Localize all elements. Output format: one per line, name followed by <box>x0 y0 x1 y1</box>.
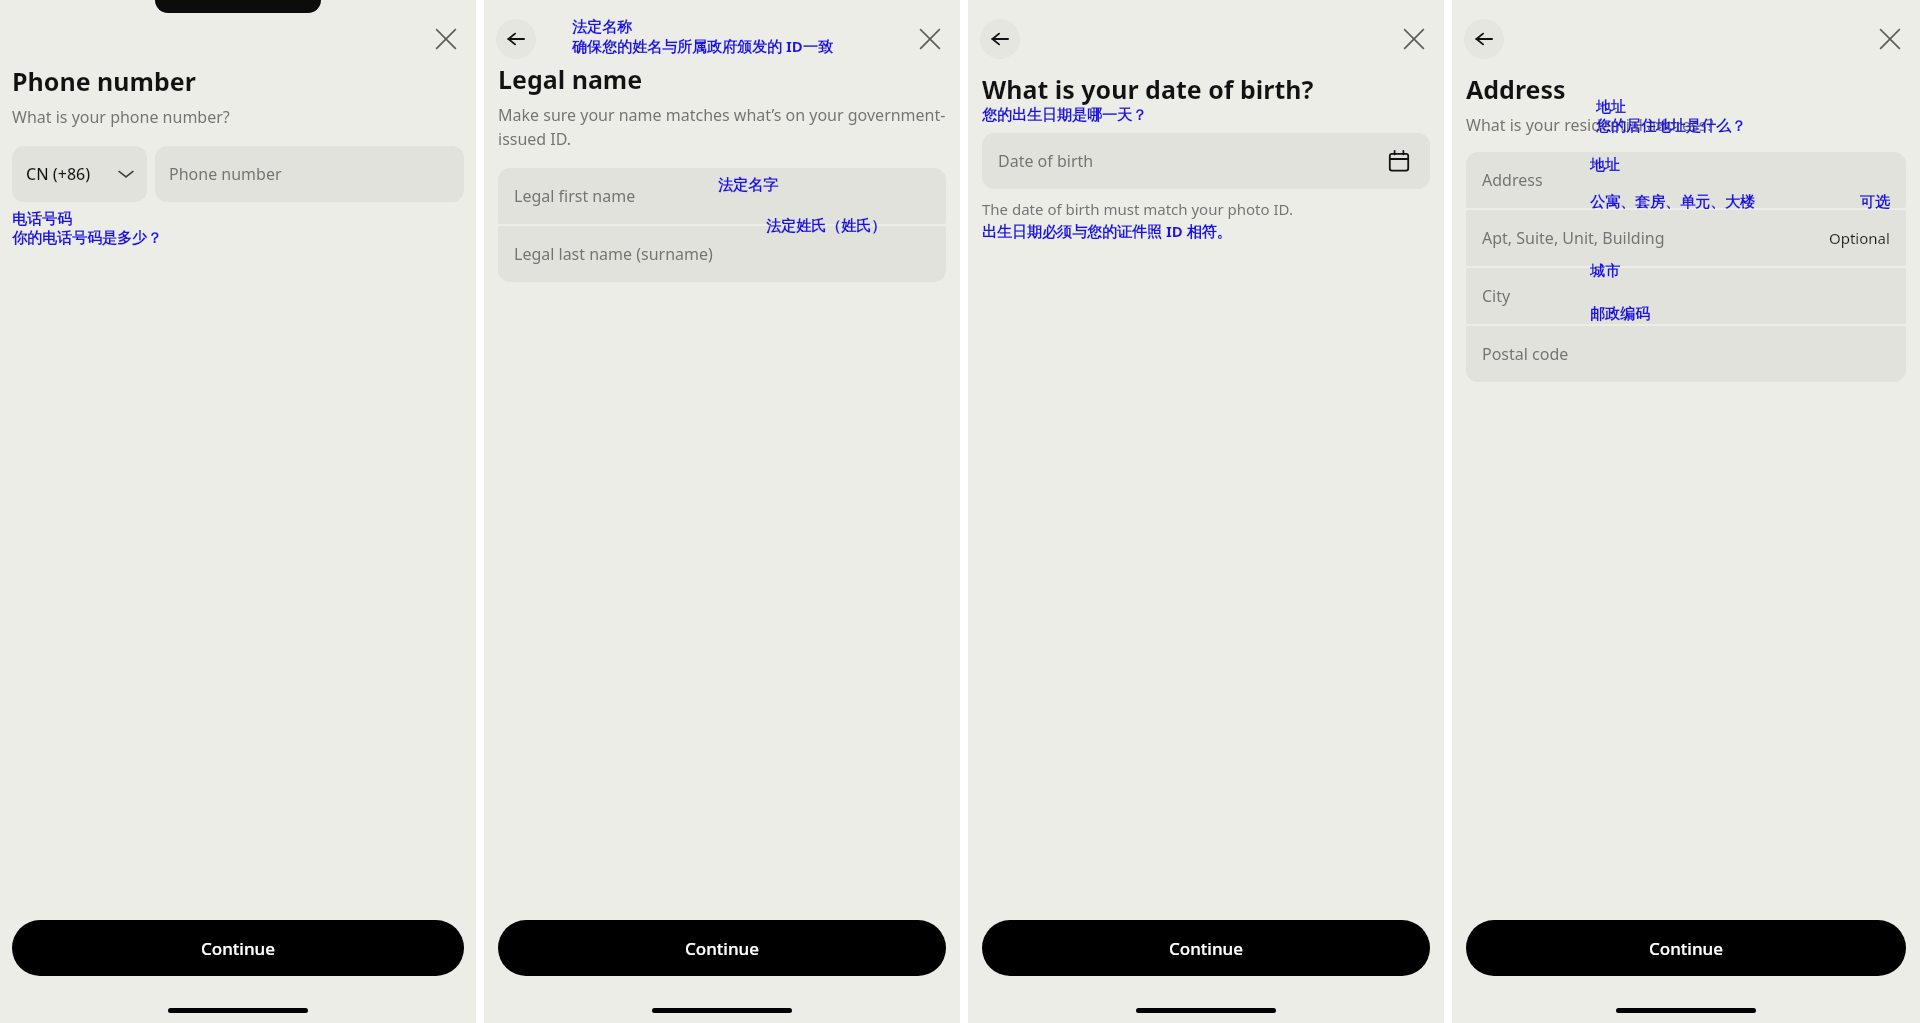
staticText: Legal first name <box>514 185 636 207</box>
staticText: Continue <box>1169 937 1244 960</box>
button[interactable]: Continue <box>12 920 464 976</box>
staticText: Apt, Suite, Unit, Building <box>1482 227 1665 249</box>
staticText: Address <box>1482 169 1543 191</box>
staticText: Optional <box>1829 228 1890 248</box>
staticText: What is your residential address? <box>1466 114 1714 136</box>
staticText: City <box>1482 285 1511 307</box>
staticText: Continue <box>201 937 276 960</box>
button[interactable]: CN (+86) <box>12 146 147 202</box>
staticText: Continue <box>685 937 760 960</box>
staticText: What is your date of birth? <box>982 72 1314 106</box>
staticText: 法定名字 <box>718 176 778 195</box>
staticText: Date of birth <box>998 150 1094 172</box>
staticText: CN (+86) <box>26 163 91 185</box>
staticText: Postal code <box>1482 343 1569 365</box>
button[interactable]: Continue <box>982 920 1430 976</box>
staticText: 您的出生日期是哪一天？ <box>982 106 1147 125</box>
button[interactable]: City <box>1466 268 1906 324</box>
staticText: Phone number <box>12 64 196 98</box>
staticText: 公寓、套房、单元、大楼 <box>1590 193 1755 212</box>
button[interactable]: Close <box>908 17 952 61</box>
button[interactable]: Date of birth <box>982 133 1430 189</box>
button[interactable]: Address <box>1466 152 1906 208</box>
staticText: Make sure your name matches what’s on yo… <box>498 104 946 150</box>
staticText: 地址 <box>1590 156 1620 175</box>
staticText: The date of birth must match your photo … <box>982 199 1293 219</box>
staticText: Address <box>1466 72 1566 106</box>
staticText: Phone number <box>169 163 282 185</box>
staticText: 出生日期必须与您的证件照 ID 相符。 <box>982 221 1232 241</box>
staticText: Continue <box>1649 937 1724 960</box>
staticText: 法定名称 确保您的姓名与所属政府颁发的 ID一致 <box>572 18 833 56</box>
button[interactable]: Back <box>1464 19 1504 59</box>
button[interactable]: Close <box>1392 17 1436 61</box>
button[interactable]: Close <box>424 17 468 61</box>
button[interactable]: Continue <box>1466 920 1906 976</box>
button[interactable]: Phone number <box>155 146 464 202</box>
staticText: 电话号码 你的电话号码是多少？ <box>12 210 162 248</box>
button[interactable]: Legal last name (surname) <box>498 226 946 282</box>
staticText: Legal name <box>498 62 643 96</box>
button[interactable]: Close <box>1868 17 1912 61</box>
button[interactable]: Legal first name <box>498 168 946 224</box>
staticText: 可选 <box>1860 193 1890 212</box>
staticText: 城市 <box>1590 262 1620 281</box>
button[interactable]: Back <box>980 19 1020 59</box>
staticText: 邮政编码 <box>1590 305 1650 324</box>
button[interactable]: Apt, Suite, Unit, Building <box>1466 210 1906 266</box>
button[interactable]: Pick date <box>1384 146 1414 176</box>
button[interactable]: Postal code <box>1466 326 1906 382</box>
staticText: Legal last name (surname) <box>514 243 713 265</box>
staticText: What is your phone number? <box>12 106 230 128</box>
staticText: 地址 <box>1596 98 1626 117</box>
button[interactable]: Back <box>496 19 536 59</box>
button[interactable]: Continue <box>498 920 946 976</box>
staticText: 您的居住地址是什么？ <box>1596 117 1746 136</box>
staticText: 法定姓氏（姓氏） <box>766 217 886 236</box>
